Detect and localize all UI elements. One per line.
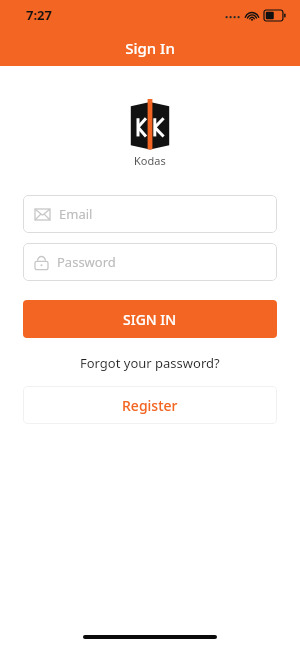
staticText: Register [122,396,178,415]
button[interactable]: Email [23,195,277,233]
staticText: 7:27 [26,6,52,24]
other: Home indicator [83,635,217,639]
button[interactable]: Register [23,386,277,424]
staticText: Email [59,205,93,223]
staticText: Forgot your password? [80,354,220,372]
button[interactable]: Password [23,243,277,281]
staticText: SIGN IN [123,310,177,329]
button[interactable]: Forgot your password? [74,352,226,374]
button[interactable]: SIGN IN [23,300,277,338]
staticText: Password [57,253,116,271]
staticText: Sign In [125,38,175,58]
staticText: Kodas [134,153,166,168]
